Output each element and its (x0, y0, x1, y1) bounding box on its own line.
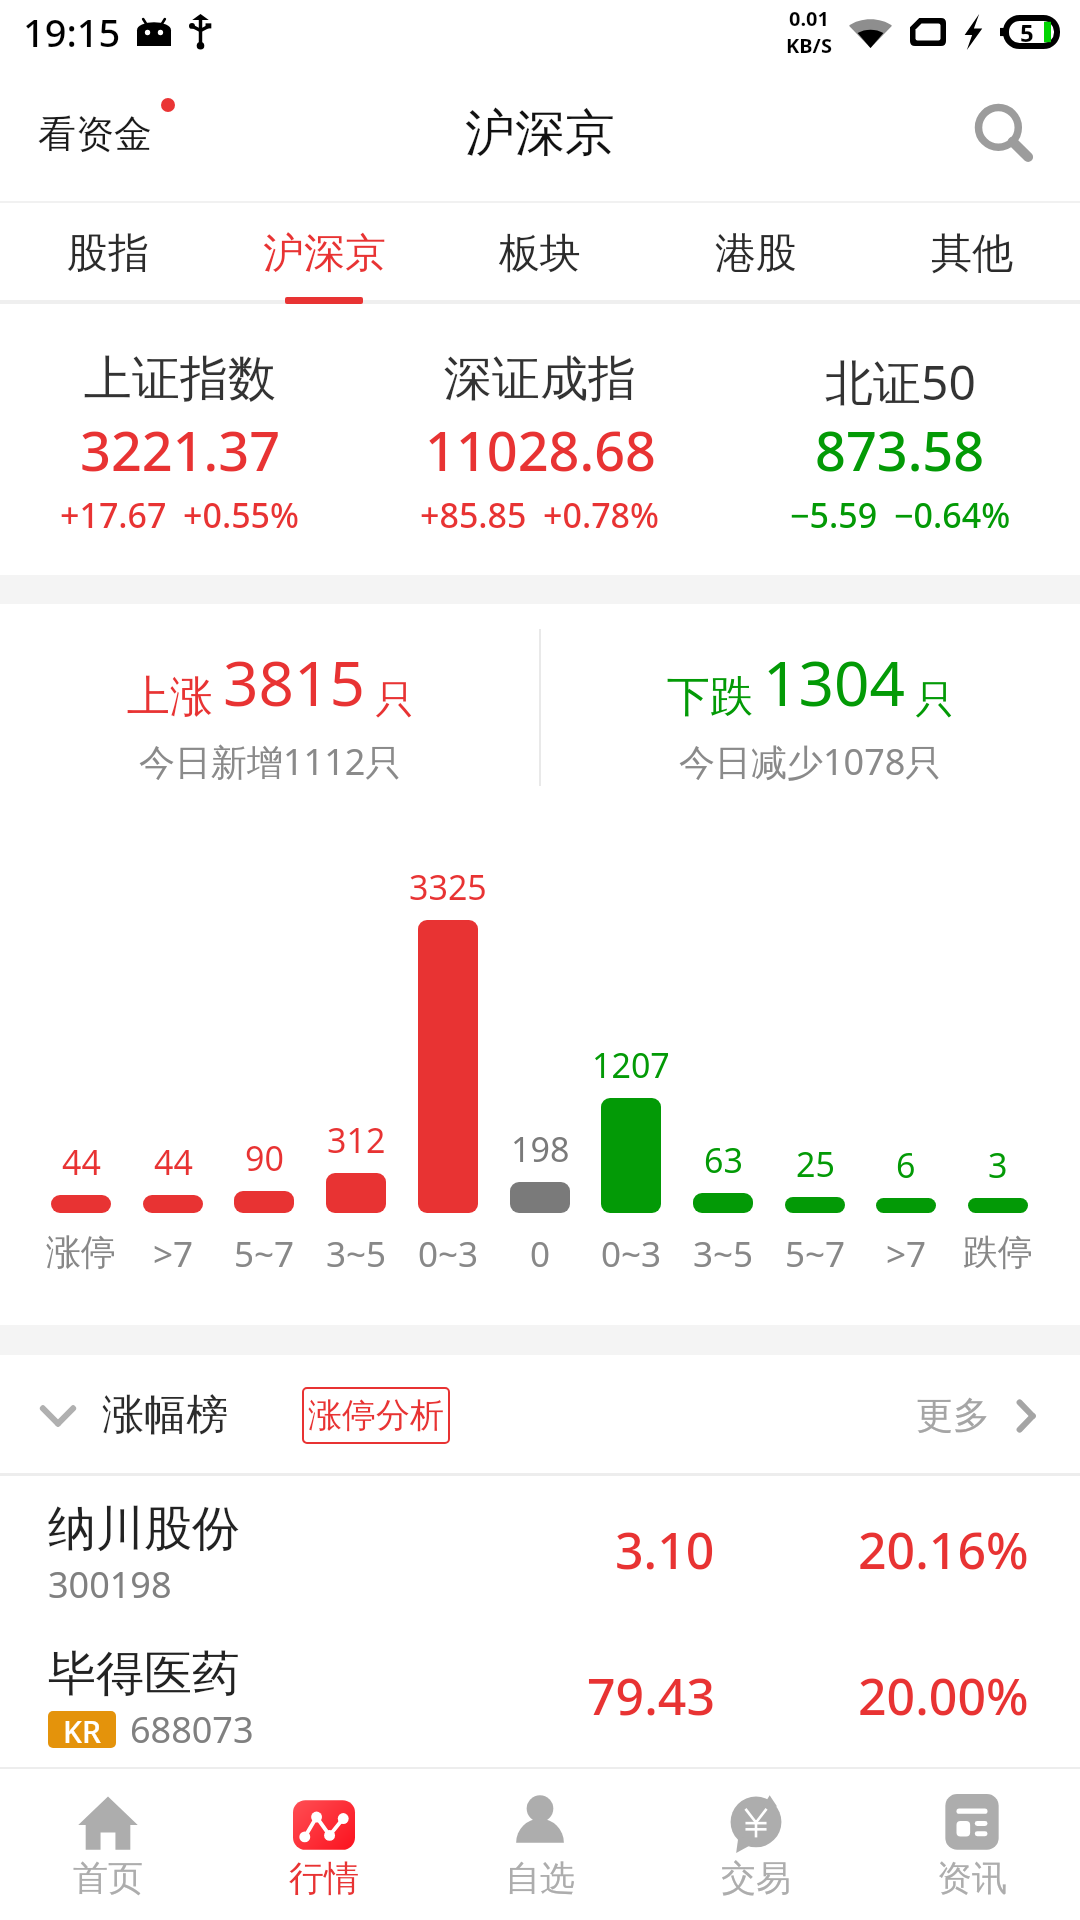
staticText: 3~5 (693, 1230, 754, 1278)
staticText: KR (63, 1711, 101, 1748)
staticText: 11028.68 (425, 413, 656, 487)
button[interactable]: 更多 (916, 1392, 1034, 1439)
staticText: 44 (62, 1139, 101, 1185)
staticText: 沪深京 (263, 228, 386, 280)
staticText: 自选 (505, 1856, 575, 1900)
staticText: 上证指数 (84, 349, 276, 409)
staticText: 1207 (592, 1042, 670, 1088)
staticText: 上涨 (127, 670, 213, 724)
staticText: 北证50 (825, 349, 976, 415)
staticText: 只 (915, 675, 954, 724)
staticText: 3221.37 (80, 413, 281, 487)
button[interactable]: 交易 (648, 1769, 864, 1920)
staticText: +17.67 (60, 492, 167, 538)
staticText: >7 (153, 1230, 194, 1278)
staticText: +0.78% (543, 492, 660, 538)
staticText: 198 (511, 1126, 570, 1172)
staticText: 0~3 (601, 1230, 662, 1278)
button[interactable]: 港股 (648, 196, 864, 307)
staticText: 90 (245, 1135, 284, 1181)
staticText: 0.01 (789, 5, 829, 32)
staticText: 79.43 (587, 1662, 715, 1730)
staticText: 63 (704, 1137, 743, 1183)
staticText: 只 (375, 675, 414, 724)
button[interactable]: 北证50 (720, 308, 1080, 568)
button[interactable]: 其他 (864, 196, 1080, 307)
staticText: 交易 (721, 1856, 791, 1900)
staticText: 3.10 (615, 1516, 715, 1584)
staticText: 纳川股份 (48, 1499, 240, 1559)
staticText: 3 (988, 1142, 1008, 1188)
staticText: 20.00% (858, 1662, 1029, 1730)
staticText: 5 (1020, 16, 1034, 49)
staticText: 行情 (289, 1856, 359, 1900)
staticText: 312 (327, 1117, 386, 1163)
button[interactable]: 自选 (432, 1769, 648, 1920)
staticText: −5.59 (790, 492, 878, 538)
staticText: 19:15 (23, 6, 121, 58)
staticText: −0.64% (894, 492, 1011, 538)
button[interactable]: 涨停分析 (302, 1387, 450, 1444)
button[interactable]: 板块 (432, 196, 648, 307)
button[interactable]: 涨幅榜 (40, 1387, 450, 1444)
staticText: 跌停 (963, 1230, 1033, 1274)
staticText: +0.55% (183, 492, 300, 538)
staticText: 今日新增1112只 (139, 737, 402, 786)
staticText: 深证成指 (444, 349, 636, 409)
button[interactable]: 沪深京 (216, 196, 432, 307)
button[interactable]: 股指 (0, 196, 216, 307)
staticText: KB/S (786, 32, 832, 59)
staticText: 0~3 (418, 1230, 479, 1278)
staticText: 6 (896, 1142, 916, 1188)
staticText: 更多 (916, 1392, 990, 1439)
staticText: 5~7 (234, 1230, 295, 1278)
staticText: 5~7 (785, 1230, 846, 1278)
staticText: 股指 (67, 228, 149, 280)
button[interactable]: 纳川股份 (0, 1476, 1080, 1624)
button[interactable]: 深证成指 (360, 308, 720, 568)
staticText: 首页 (73, 1856, 143, 1900)
staticText: 300198 (48, 1560, 172, 1609)
button[interactable]: 上证指数 (0, 308, 360, 568)
staticText: 港股 (715, 228, 797, 280)
staticText: 0 (530, 1230, 551, 1278)
button[interactable]: 行情 (216, 1769, 432, 1920)
staticText: 44 (154, 1139, 193, 1185)
staticText: 25 (796, 1141, 835, 1187)
staticText: 1304 (763, 640, 905, 724)
staticText: 688073 (130, 1705, 254, 1754)
staticText: 下跌 (667, 670, 753, 724)
staticText: 3815 (223, 640, 365, 724)
staticText: 其他 (931, 228, 1013, 280)
button[interactable]: Search (954, 83, 1054, 183)
button[interactable]: 首页 (0, 1769, 216, 1920)
staticText: 沪深京 (465, 102, 615, 165)
staticText: 今日减少1078只 (679, 737, 942, 786)
staticText: 3~5 (326, 1230, 387, 1278)
staticText: 3325 (409, 864, 487, 910)
staticText: 涨停 (46, 1230, 116, 1274)
button[interactable]: 毕得医药 (0, 1624, 1080, 1767)
staticText: 看资金 (38, 110, 152, 158)
staticText: 资讯 (937, 1856, 1007, 1900)
button[interactable]: 看资金 (38, 110, 175, 158)
staticText: >7 (886, 1230, 927, 1278)
staticText: 873.58 (815, 413, 985, 487)
staticText: 涨幅榜 (102, 1389, 228, 1442)
staticText: 20.16% (858, 1516, 1029, 1584)
staticText: 板块 (499, 228, 581, 280)
staticText: 涨停分析 (308, 1394, 444, 1437)
staticText: +85.85 (420, 492, 527, 538)
button[interactable]: 下跌 (540, 604, 1080, 830)
staticText: 毕得医药 (48, 1644, 240, 1704)
button[interactable]: 资讯 (864, 1769, 1080, 1920)
button[interactable]: 上涨 (0, 604, 540, 830)
